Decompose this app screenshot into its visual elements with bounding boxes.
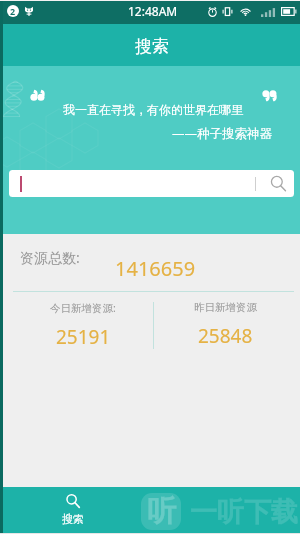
staticText: 25191 <box>56 324 111 350</box>
staticText: ——种子搜索神器 <box>172 125 273 142</box>
staticText: 12:48AM <box>128 3 178 19</box>
button[interactable]: 搜索 <box>23 487 123 534</box>
button[interactable]: Search <box>9 170 294 197</box>
staticText: 搜索 <box>62 512 84 526</box>
staticText: 今日新增资源: <box>50 301 116 315</box>
staticText: 2 <box>10 5 16 17</box>
staticText: 我一直在寻找，有你的世界在哪里 <box>63 102 243 117</box>
other: Search <box>270 175 288 193</box>
staticText: 资源总数: <box>20 248 80 267</box>
staticText: 昨日新增资源 <box>194 301 257 314</box>
staticText: 搜索 <box>135 36 169 57</box>
staticText: 1416659 <box>115 255 196 282</box>
staticText: 听 <box>147 493 176 530</box>
staticText: 一听下载 <box>190 495 298 529</box>
staticText: 25848 <box>198 323 253 349</box>
